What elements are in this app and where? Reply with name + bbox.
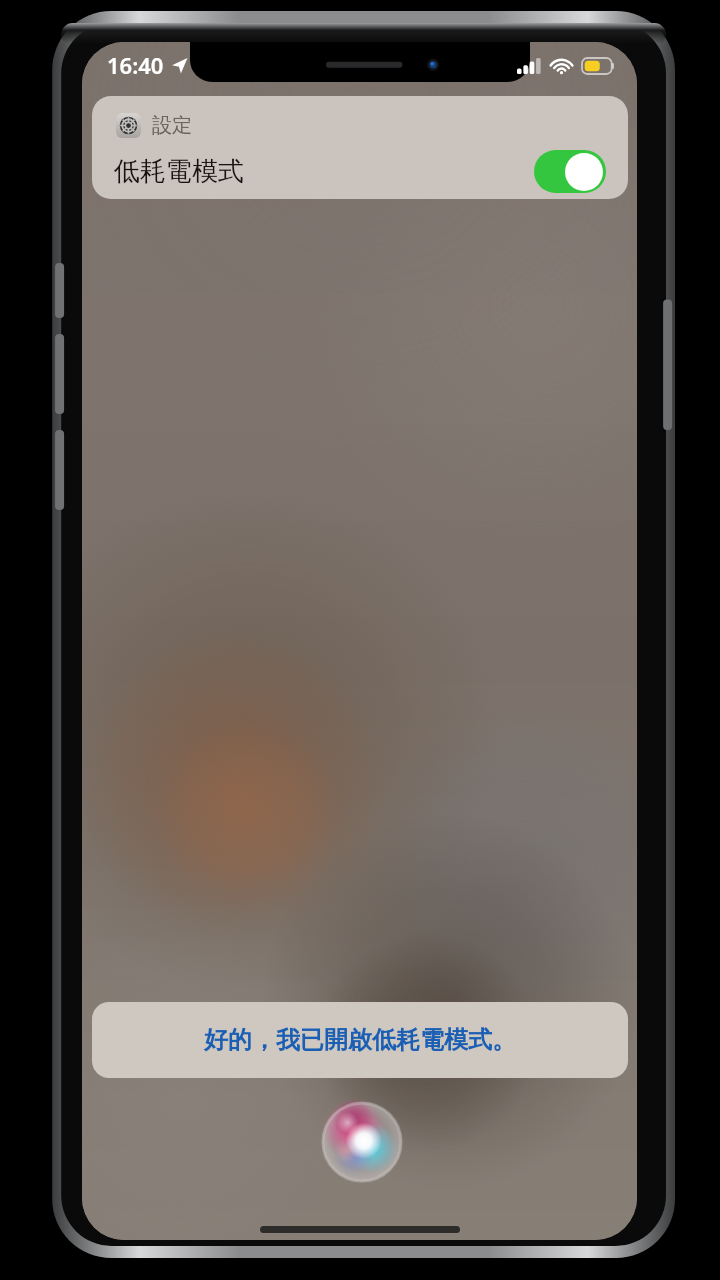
- button[interactable]: Siri: [320, 1100, 404, 1184]
- staticText: 設定: [152, 113, 192, 138]
- button[interactable]: Low Power Mode toggle, on: [534, 150, 606, 193]
- staticText: 好的，我已開啟低耗電模式。: [204, 1025, 516, 1055]
- staticText: 16:40: [107, 50, 164, 80]
- button[interactable]: 設定: [114, 111, 194, 140]
- button[interactable]: 低耗電模式: [92, 148, 628, 195]
- staticText: 低耗電模式: [114, 155, 244, 188]
- button[interactable]: 好的，我已開啟低耗電模式。: [92, 1002, 628, 1078]
